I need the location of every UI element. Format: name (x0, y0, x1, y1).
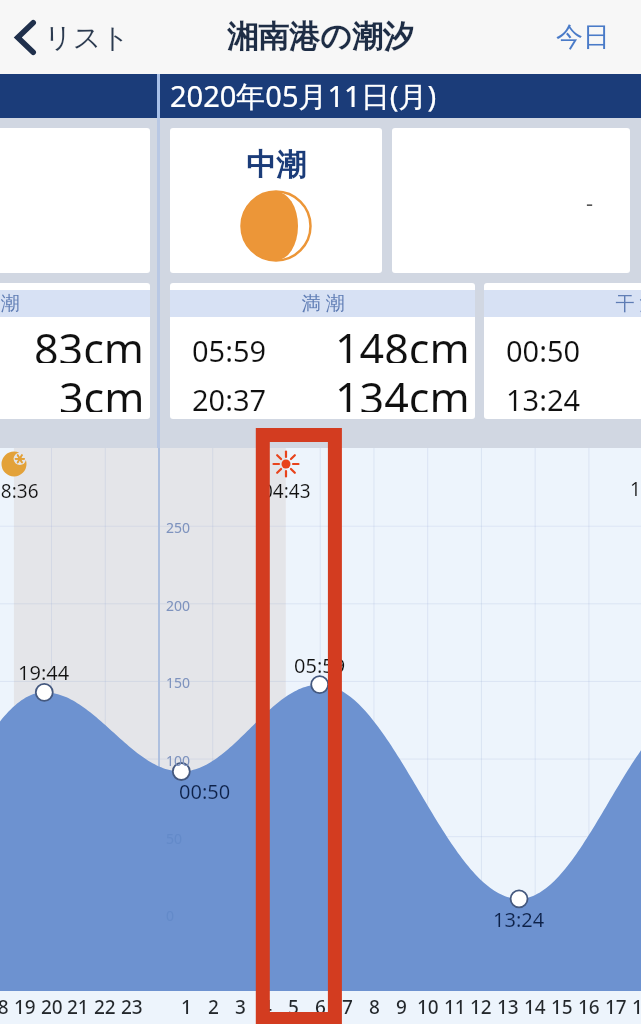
staticText: 16 (578, 994, 600, 1020)
staticText: 6 (315, 994, 326, 1020)
staticText: 18 (0, 994, 9, 1020)
staticText: 5 (288, 994, 299, 1020)
staticText: 100 (166, 751, 191, 767)
staticText: - (586, 187, 594, 217)
staticText: リスト (44, 20, 130, 55)
staticText: 50 (166, 829, 183, 845)
staticText: 今日 (556, 20, 610, 54)
button[interactable]: 今日 (540, 10, 641, 64)
staticText: 83cm (34, 319, 145, 363)
staticText: 干潮 (613, 292, 641, 316)
staticText: 18 (632, 994, 641, 1020)
staticText: 4 (261, 994, 272, 1020)
staticText: 20:37 (192, 380, 267, 419)
button[interactable]: 干潮 (0, 283, 150, 419)
staticText: 2020年05月11日(月) (170, 76, 437, 116)
staticText: 13:24 (493, 906, 545, 932)
staticText: 05:59 (192, 331, 267, 370)
staticText: 17 (605, 994, 627, 1020)
staticText: 22 (94, 994, 116, 1020)
staticText: 11 (444, 994, 466, 1020)
staticText: 干潮 (0, 292, 22, 316)
staticText: 10 (417, 994, 439, 1020)
staticText: 湘南港の潮汐 (227, 17, 414, 56)
staticText: 7 (342, 994, 353, 1020)
staticText: 18:36 (0, 478, 39, 504)
staticText: 9 (396, 994, 407, 1020)
staticText: 18:37 (630, 476, 641, 502)
staticText: 04:43 (262, 478, 311, 504)
staticText: 00:50 (506, 331, 581, 370)
staticText: 05:59 (294, 652, 346, 678)
staticText: 19:44 (18, 659, 70, 685)
staticText: 19 (14, 994, 36, 1020)
button[interactable]: リスト (10, 0, 135, 74)
staticText: 0 (166, 906, 175, 922)
staticText: 13:24 (506, 380, 581, 419)
staticText: 中潮 (246, 146, 306, 184)
staticText: 200 (166, 596, 191, 612)
staticText: 13 (497, 994, 519, 1020)
staticText: 3 (235, 994, 246, 1020)
staticText: 134cm (335, 368, 470, 412)
staticText: 8 (369, 994, 380, 1020)
staticText: 2 (208, 994, 219, 1020)
staticText: 3cm (59, 368, 145, 412)
staticText: 満潮 (299, 292, 347, 316)
staticText: 21 (67, 994, 89, 1020)
staticText: 00:50 (179, 778, 231, 804)
staticText: 148cm (335, 319, 470, 363)
staticText: 20 (41, 994, 63, 1020)
staticText: 1 (181, 994, 192, 1020)
staticText: 23 (121, 994, 143, 1020)
staticText: 15 (551, 994, 573, 1020)
button[interactable]: 干潮 (484, 283, 641, 419)
button[interactable]: 満潮 (170, 283, 475, 419)
staticText: 150 (166, 673, 191, 689)
staticText: 250 (166, 518, 191, 534)
staticText: 14 (524, 994, 546, 1020)
button[interactable]: 中潮 (170, 128, 382, 273)
staticText: 12 (470, 994, 492, 1020)
